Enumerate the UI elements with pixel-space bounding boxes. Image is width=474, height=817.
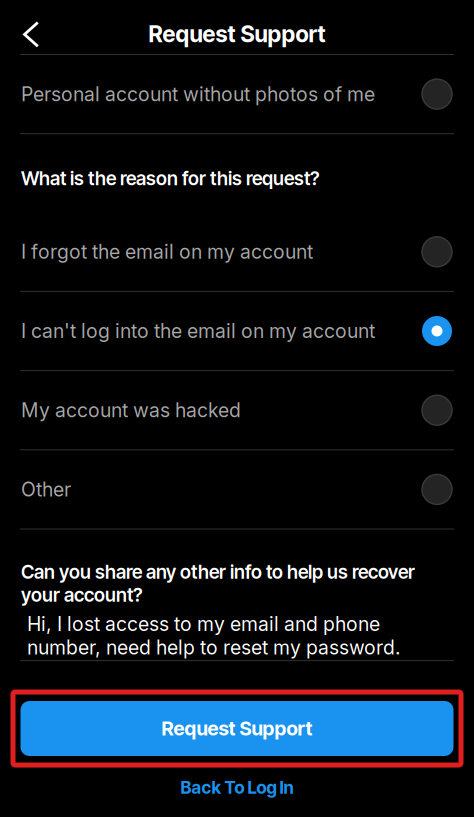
- staticText: What is the reason for this request?: [21, 167, 320, 190]
- button[interactable]: Request Support: [0, 701, 474, 756]
- staticText: Back To Log In: [180, 777, 293, 798]
- staticText: I forgot the email on my account: [21, 240, 313, 263]
- button[interactable]: Personal account without photos of me: [0, 55, 474, 133]
- staticText: Can you share any other info to help us …: [21, 560, 415, 606]
- staticText: Request Support: [161, 717, 312, 740]
- staticText: Request Support: [148, 20, 325, 48]
- staticText: My account was hacked: [21, 398, 241, 422]
- staticText: I can't log into the email on my account: [21, 319, 375, 343]
- button[interactable]: My account was hacked: [0, 371, 474, 449]
- button[interactable]: Back To Log In: [0, 773, 474, 802]
- staticText: Personal account without photos of me: [21, 82, 375, 106]
- button[interactable]: Back: [0, 0, 56, 54]
- button[interactable]: I forgot the email on my account: [0, 213, 474, 291]
- staticText: Hi, I lost access to my email and phone …: [27, 612, 401, 659]
- button[interactable]: I can't log into the email on my account: [0, 292, 474, 370]
- button[interactable]: Other: [0, 450, 474, 528]
- staticText: Other: [21, 478, 71, 501]
